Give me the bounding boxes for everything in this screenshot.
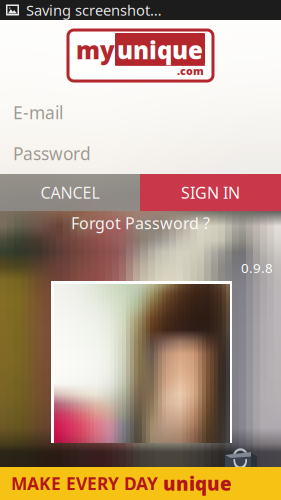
staticText: CANCEL — [40, 182, 99, 203]
staticText: unique — [158, 471, 232, 496]
staticText: unique — [117, 34, 203, 66]
staticText: SIGN IN — [181, 182, 240, 203]
staticText: Forgot Password ? — [71, 212, 210, 234]
button[interactable]: Forgot Password ? — [0, 211, 281, 235]
button[interactable]: SIGN IN — [140, 174, 281, 211]
staticText: .com — [177, 64, 204, 78]
staticText: Saving screenshot… — [26, 0, 162, 20]
staticText: Password — [13, 142, 91, 165]
staticText: E-mail — [13, 101, 63, 124]
staticText: my — [76, 34, 115, 66]
button[interactable]: CANCEL — [0, 174, 140, 211]
staticText: 0.9.8 — [241, 259, 273, 277]
staticText: MAKE EVERY DAY — [11, 472, 158, 495]
